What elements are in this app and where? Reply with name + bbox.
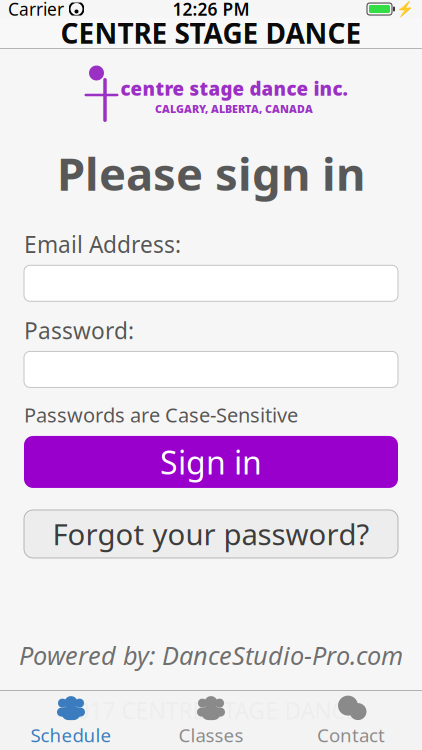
staticText: Powered by: DanceStudio-Pro.com xyxy=(19,638,403,672)
staticText: Schedule xyxy=(30,723,111,747)
staticText: CALGARY, ALBERTA, CANADA xyxy=(155,102,313,116)
staticText: 2017 CENTRE STAGE DANCE xyxy=(63,695,358,725)
staticText: Password: xyxy=(24,315,134,345)
staticText: Carrier xyxy=(8,0,64,20)
button[interactable]: Classes xyxy=(141,693,281,747)
staticText: Classes xyxy=(178,723,243,747)
staticText: Email Address: xyxy=(24,229,181,259)
staticText: Forgot your password? xyxy=(52,514,369,553)
staticText: CENTRE STAGE DANCE xyxy=(60,14,361,52)
button[interactable]: Forgot your password? xyxy=(24,510,398,558)
button[interactable]: Schedule xyxy=(1,693,141,747)
staticText: Please sign in xyxy=(57,143,365,203)
staticText: Sign in xyxy=(160,441,262,483)
button[interactable]: Contact xyxy=(281,693,421,747)
staticText: Passwords are Case-Sensitive xyxy=(24,401,298,428)
staticText: 12:26 PM xyxy=(172,0,249,20)
staticText: Contact xyxy=(317,723,385,747)
button[interactable]: Sign in xyxy=(24,436,398,488)
staticText: centre stage dance inc. xyxy=(120,76,347,101)
staticText: ⚡ xyxy=(396,1,414,17)
